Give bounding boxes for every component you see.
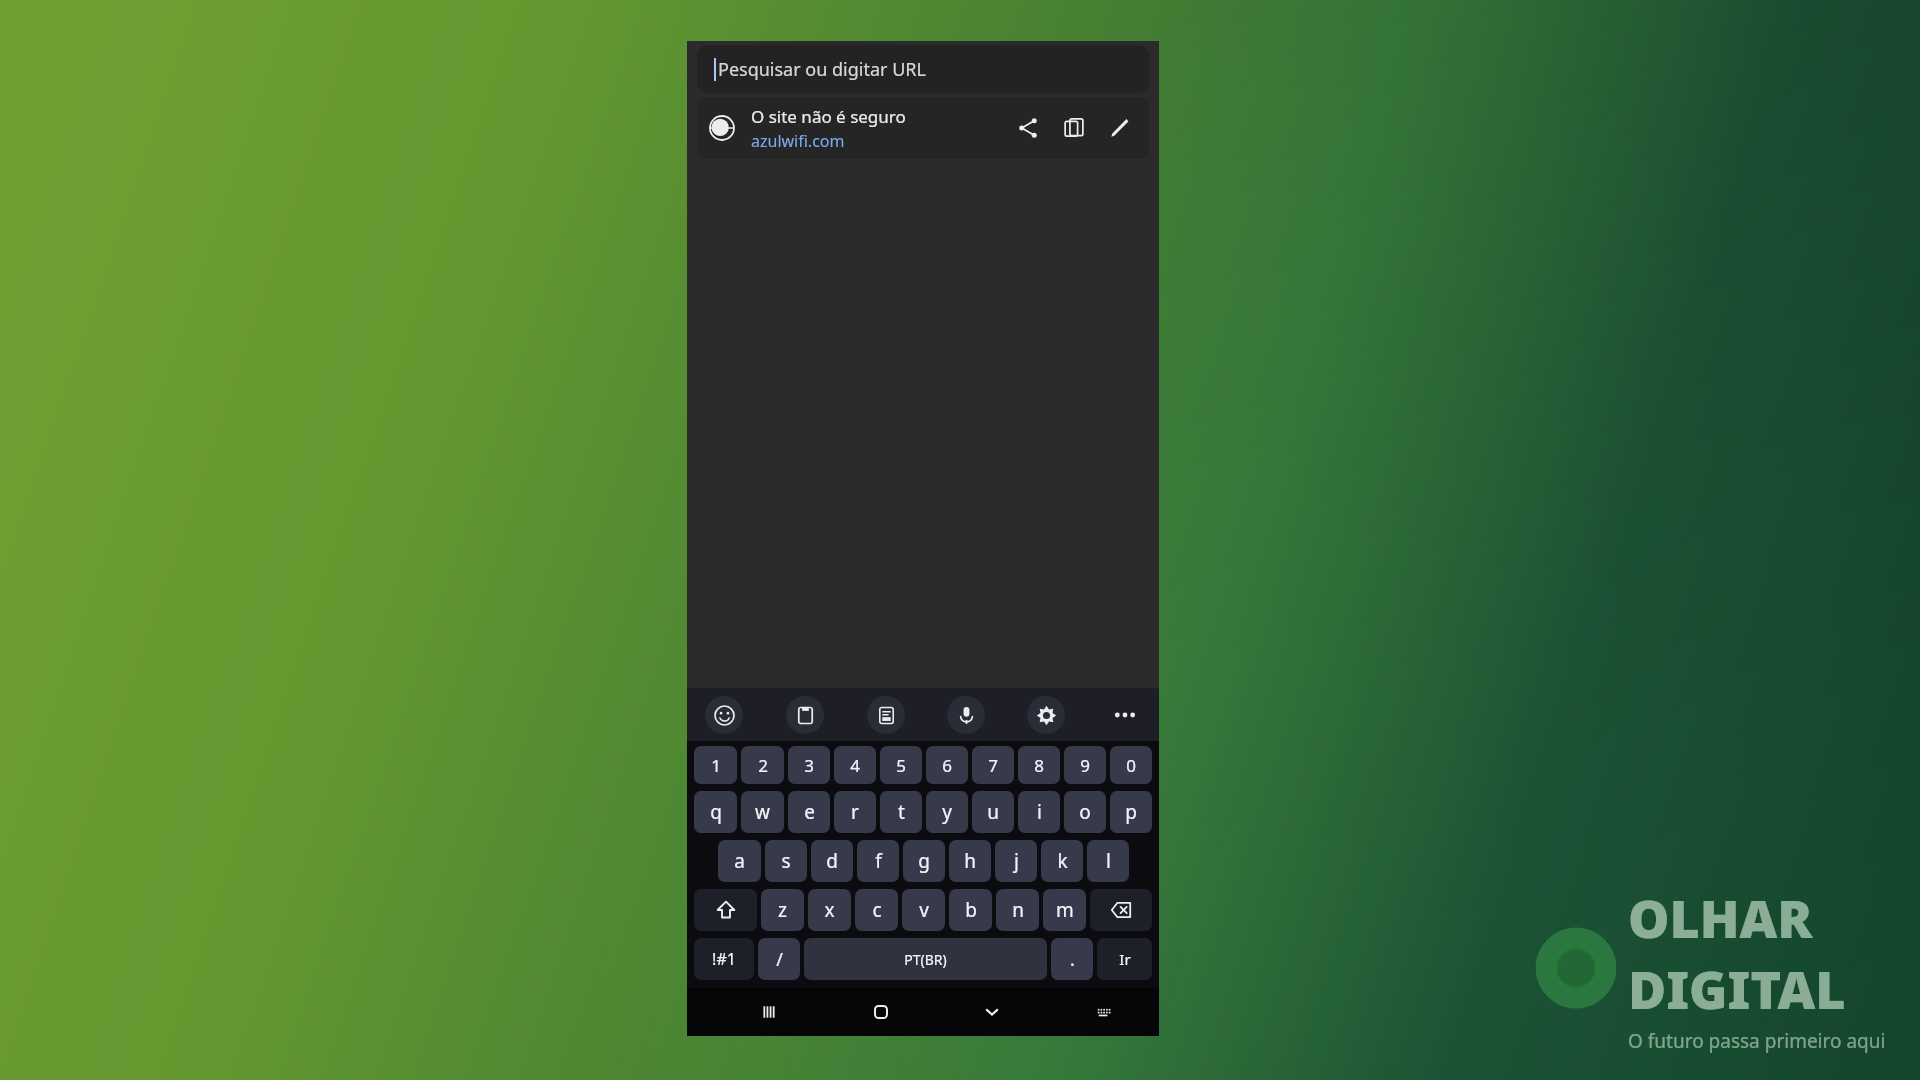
button[interactable]: f <box>857 840 899 882</box>
button[interactable]: w <box>741 791 784 833</box>
staticText: O site não é seguro <box>751 105 906 128</box>
button[interactable]: Hide keyboard <box>970 990 1014 1034</box>
button[interactable]: Edit <box>1097 105 1143 151</box>
button[interactable]: 8 <box>1018 746 1060 784</box>
button[interactable]: Backspace <box>1090 889 1152 931</box>
button[interactable]: 5 <box>880 746 922 784</box>
staticText: k <box>1057 848 1068 874</box>
staticText: Ir <box>1119 949 1131 969</box>
staticText: PT(BR) <box>904 950 947 969</box>
staticText: w <box>755 799 770 825</box>
button[interactable]: O site não é seguro <box>697 97 1149 159</box>
button[interactable]: d <box>811 840 853 882</box>
staticText: 3 <box>804 754 814 777</box>
staticText: r <box>851 799 859 825</box>
button[interactable]: b <box>949 889 992 931</box>
button[interactable]: c <box>855 889 898 931</box>
staticText: / <box>776 947 783 972</box>
button[interactable]: n <box>996 889 1039 931</box>
button[interactable]: More options <box>1107 697 1143 733</box>
staticText: 9 <box>1080 754 1090 777</box>
button[interactable]: Text editing <box>867 696 905 734</box>
staticText: m <box>1056 897 1074 923</box>
button[interactable]: Emoji <box>705 696 743 734</box>
staticText: d <box>826 848 838 874</box>
button[interactable]: k <box>1041 840 1083 882</box>
button[interactable]: i <box>1018 791 1060 833</box>
staticText: !#1 <box>712 948 736 970</box>
button[interactable]: . <box>1051 938 1093 980</box>
staticText: o <box>1079 799 1091 825</box>
button[interactable]: 0 <box>1110 746 1152 784</box>
button[interactable]: Recents <box>747 990 791 1034</box>
button[interactable]: s <box>765 840 807 882</box>
staticText: z <box>778 897 787 923</box>
button[interactable]: v <box>902 889 945 931</box>
button[interactable]: Pesquisar ou digitar URL <box>697 45 1149 93</box>
button[interactable]: a <box>718 840 761 882</box>
staticText: azulwifi.com <box>751 130 845 152</box>
button[interactable]: t <box>880 791 922 833</box>
button[interactable]: p <box>1110 791 1152 833</box>
button[interactable]: Shift <box>694 889 757 931</box>
button[interactable]: PT(BR) <box>804 938 1047 980</box>
staticText: c <box>872 897 882 923</box>
button[interactable]: Share <box>1005 105 1051 151</box>
button[interactable]: Change keyboard <box>1081 990 1125 1034</box>
button[interactable]: j <box>995 840 1037 882</box>
staticText: DIGITAL <box>1628 953 1846 1024</box>
button[interactable]: 3 <box>788 746 830 784</box>
button[interactable]: 6 <box>926 746 968 784</box>
button[interactable]: Home <box>859 990 903 1034</box>
staticText: i <box>1037 799 1042 825</box>
staticText: 7 <box>988 754 998 777</box>
staticText: v <box>919 897 929 923</box>
staticText: OLHAR <box>1628 882 1813 953</box>
button[interactable]: l <box>1087 840 1129 882</box>
button[interactable]: r <box>834 791 876 833</box>
button[interactable]: u <box>972 791 1014 833</box>
button[interactable]: y <box>926 791 968 833</box>
staticText: 8 <box>1034 754 1044 777</box>
staticText: h <box>964 848 976 874</box>
button[interactable]: 2 <box>741 746 784 784</box>
staticText: 5 <box>896 754 906 777</box>
button[interactable]: 4 <box>834 746 876 784</box>
button[interactable]: m <box>1043 889 1086 931</box>
button[interactable]: h <box>949 840 991 882</box>
button[interactable]: q <box>694 791 737 833</box>
button[interactable]: o <box>1064 791 1106 833</box>
staticText: Pesquisar ou digitar URL <box>718 57 926 82</box>
staticText: t <box>898 799 905 825</box>
button[interactable]: Voice input <box>947 696 985 734</box>
staticText: 1 <box>711 754 721 777</box>
staticText: O futuro passa primeiro aqui <box>1628 1028 1886 1054</box>
staticText: b <box>965 897 977 923</box>
staticText: q <box>710 799 722 825</box>
staticText: u <box>987 799 999 825</box>
staticText: 4 <box>850 754 860 777</box>
button[interactable]: Copy <box>1051 105 1097 151</box>
staticText: 0 <box>1126 754 1136 777</box>
button[interactable]: Settings <box>1027 696 1065 734</box>
button[interactable]: !#1 <box>694 938 754 980</box>
staticText: n <box>1012 897 1024 923</box>
button[interactable]: 1 <box>694 746 737 784</box>
button[interactable]: Ir <box>1097 938 1152 980</box>
button[interactable]: z <box>761 889 804 931</box>
staticText: p <box>1125 799 1137 825</box>
button[interactable]: Clipboard <box>786 696 824 734</box>
staticText: j <box>1014 848 1019 874</box>
button[interactable]: 7 <box>972 746 1014 784</box>
staticText: 6 <box>942 754 952 777</box>
button[interactable]: / <box>758 938 800 980</box>
staticText: l <box>1106 848 1111 874</box>
staticText: s <box>781 848 791 874</box>
button[interactable]: 9 <box>1064 746 1106 784</box>
staticText: . <box>1070 947 1075 972</box>
button[interactable]: x <box>808 889 851 931</box>
button[interactable]: g <box>903 840 945 882</box>
staticText: x <box>824 897 835 923</box>
staticText: 2 <box>758 754 768 777</box>
button[interactable]: e <box>788 791 830 833</box>
